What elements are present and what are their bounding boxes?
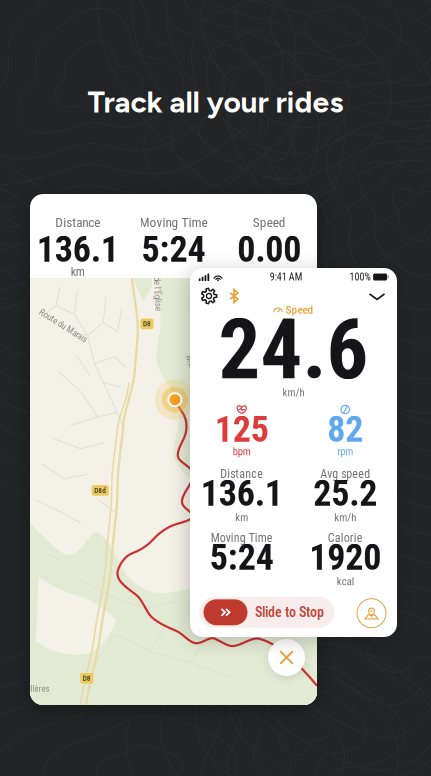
staticText: Route du Valais [211,289,264,299]
staticText: 5:24 [141,228,205,271]
staticText: D8 [83,674,91,683]
staticText: rpm [337,445,353,458]
staticText: D8 [143,320,151,328]
staticText: Calorie [328,531,363,545]
staticText: km/h [334,511,356,524]
staticText: 136.1 [37,228,119,271]
staticText: Avg speed [320,467,370,481]
staticText: 5:24 [210,536,274,579]
button[interactable]: Bluetooth [224,286,244,306]
staticText: Track all your rides [87,84,343,120]
staticText: Speed [285,303,313,317]
staticText: km/h [282,386,304,399]
button[interactable]: Map [357,599,386,628]
staticText: 100% [350,271,371,283]
staticText: Speed [253,215,286,230]
staticText: Route du Marais [36,321,91,331]
staticText: 1920 [309,536,381,579]
staticText: km [71,265,85,279]
staticText: 0.00 [237,228,301,271]
staticText: Distance [55,215,100,230]
staticText [172,265,175,279]
staticText: 9:41 AM [270,271,303,283]
staticText: Moving Time [211,531,273,545]
staticText: Slide to Stop [255,604,324,620]
staticText: 136.1 [201,472,283,515]
staticText: D8d [94,486,106,495]
staticText: bpm [233,445,251,458]
button[interactable]: Collapse [366,285,388,307]
button[interactable]: Settings [199,286,219,306]
button[interactable]: Close [268,639,305,676]
button[interactable]: Slide to Stop [199,597,334,628]
staticText [268,265,271,279]
staticText: 82 [327,408,363,451]
staticText: de l'Église [140,289,174,299]
staticText: 25.2 [313,472,377,515]
staticText: kcal [337,575,354,588]
staticText: illères [29,684,50,694]
staticText: Distance [220,467,263,481]
staticText: 125 [215,408,269,451]
staticText: 24.6 [218,302,368,398]
staticText: Moving Time [139,215,207,230]
staticText: Marais [181,361,204,371]
staticText: km [235,511,248,524]
